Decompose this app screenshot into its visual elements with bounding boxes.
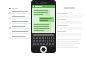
button[interactable] [57, 25, 82, 31]
button[interactable] [57, 31, 82, 37]
button[interactable] [57, 19, 82, 25]
button[interactable] [7, 25, 35, 30]
button[interactable] [7, 15, 35, 20]
button[interactable] [7, 20, 35, 25]
button[interactable] [7, 10, 35, 15]
button[interactable] [7, 35, 35, 40]
button[interactable] [34, 10, 49, 15]
button[interactable] [7, 30, 35, 35]
button[interactable] [33, 34, 54, 36]
button[interactable] [34, 24, 50, 31]
button[interactable] [55, 5, 84, 48]
button[interactable] [7, 6, 35, 48]
button[interactable] [33, 5, 54, 8]
button[interactable] [40, 18, 53, 21]
button[interactable]: Home [32, 47, 55, 53]
button[interactable] [57, 13, 82, 19]
